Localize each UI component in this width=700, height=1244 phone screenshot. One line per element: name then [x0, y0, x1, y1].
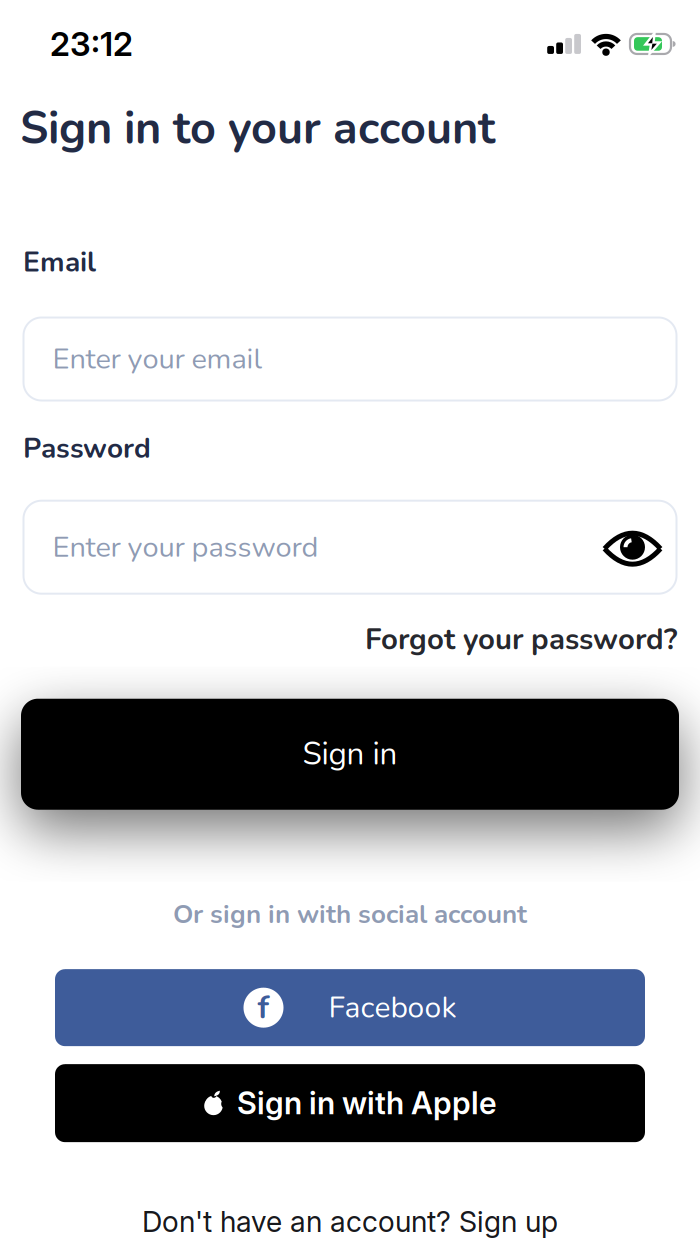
staticText: f	[257, 986, 269, 1029]
staticText: Forgot your password?	[365, 620, 677, 660]
staticText: Sign in	[302, 733, 397, 775]
button[interactable]: Don't have an account? Sign up	[142, 1204, 558, 1239]
staticText: Enter your password	[52, 527, 318, 567]
staticText: Email	[23, 243, 96, 281]
button[interactable]: Show password	[604, 529, 677, 566]
staticText: Sign in with Apple	[237, 1085, 497, 1122]
button[interactable]: Forgot your password?	[365, 620, 677, 660]
staticText: Enter your email	[52, 339, 262, 379]
staticText: Or sign in with social account	[173, 897, 527, 932]
staticText: Password	[23, 429, 151, 468]
staticText: Don't have an account? Sign up	[142, 1204, 558, 1239]
staticText: Facebook	[328, 987, 456, 1028]
button[interactable]: f	[55, 969, 645, 1046]
button[interactable]: Sign in	[21, 699, 679, 810]
staticText: 23:12	[50, 24, 133, 64]
button[interactable]: Sign in with Apple	[55, 1064, 645, 1142]
staticText: Sign in to your account	[20, 98, 495, 159]
